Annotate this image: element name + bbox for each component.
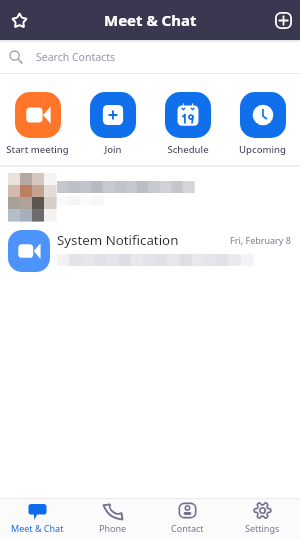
button[interactable]: Start meeting bbox=[0, 74, 75, 156]
button[interactable]: Join bbox=[75, 74, 150, 156]
staticText: Search Contacts bbox=[36, 50, 115, 64]
staticText: System Notification bbox=[57, 231, 179, 249]
staticText: Fri, February 8 bbox=[230, 234, 291, 246]
staticText: Start meeting bbox=[6, 143, 69, 156]
staticText: Meet & Chat bbox=[11, 522, 64, 534]
button[interactable]: Starred bbox=[4, 5, 34, 35]
staticText: Contact bbox=[171, 522, 204, 534]
button[interactable]: Search Contacts bbox=[0, 40, 300, 73]
button[interactable]: System Notification bbox=[0, 223, 300, 275]
button[interactable]: Settings bbox=[225, 499, 300, 532]
button[interactable]: Add bbox=[268, 5, 298, 35]
staticText: Join bbox=[104, 143, 122, 156]
button[interactable]: Contact bbox=[150, 499, 225, 532]
staticText: Upcoming bbox=[239, 143, 286, 156]
button[interactable]: Upcoming bbox=[225, 74, 300, 156]
button[interactable] bbox=[0, 167, 300, 223]
staticText: Phone bbox=[99, 522, 127, 534]
staticText: Settings bbox=[245, 522, 280, 534]
button[interactable]: Phone bbox=[75, 499, 150, 532]
staticText: Schedule bbox=[167, 143, 209, 156]
button[interactable]: Schedule bbox=[150, 74, 225, 156]
staticText: Meet & Chat bbox=[104, 10, 197, 30]
button[interactable]: Meet & Chat bbox=[0, 499, 75, 532]
